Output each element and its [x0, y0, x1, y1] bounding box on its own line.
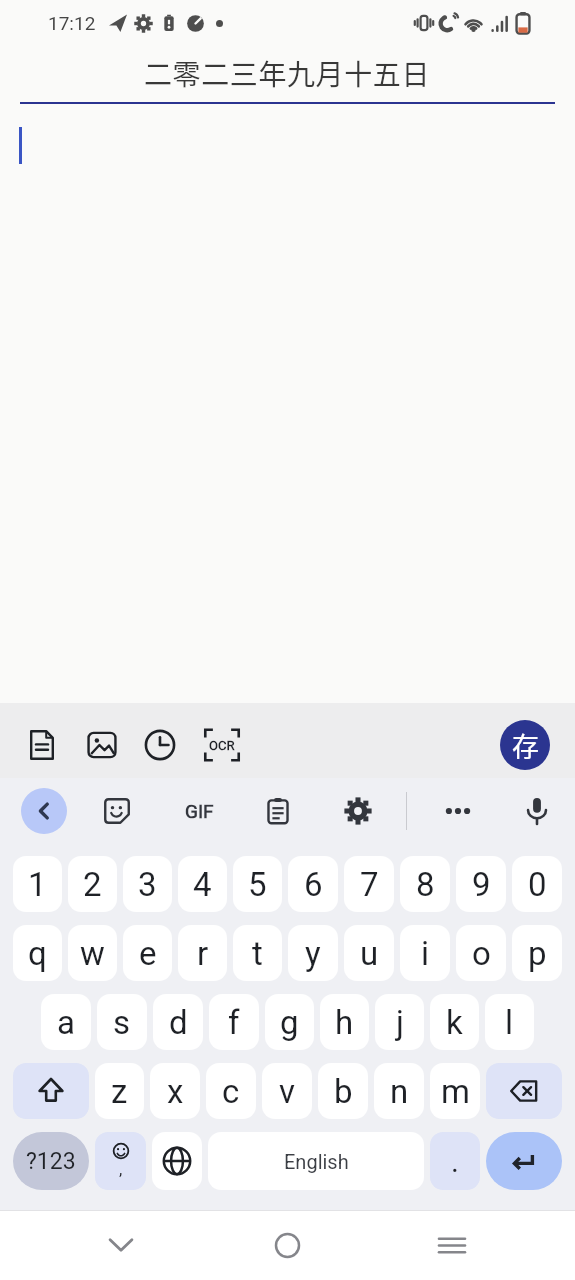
button[interactable] — [436, 1229, 468, 1261]
staticText: o — [472, 934, 491, 973]
staticText: 4 — [193, 865, 212, 904]
button[interactable] — [486, 1132, 562, 1190]
button[interactable]: h — [320, 994, 369, 1050]
button[interactable]: x — [150, 1063, 200, 1119]
button[interactable]: r — [178, 925, 227, 981]
staticText: 7 — [360, 865, 379, 904]
staticText: , — [119, 1159, 123, 1179]
button[interactable]: m — [430, 1063, 480, 1119]
button[interactable]: 7 — [344, 856, 394, 912]
staticText: k — [446, 1003, 463, 1042]
button[interactable]: English — [208, 1132, 424, 1190]
button[interactable]: t — [233, 925, 282, 981]
button[interactable]: OCR — [203, 726, 241, 764]
staticText: GIF — [185, 800, 214, 822]
button[interactable] — [13, 1063, 89, 1119]
staticText: 存 — [512, 726, 539, 765]
button[interactable] — [523, 797, 551, 825]
button[interactable]: a — [41, 994, 91, 1050]
button[interactable]: 6 — [288, 856, 338, 912]
staticText: s — [113, 1003, 131, 1042]
button[interactable] — [103, 797, 131, 825]
staticText: q — [28, 934, 47, 973]
button[interactable]: GIF — [177, 800, 221, 822]
staticText: 0 — [528, 865, 547, 904]
staticText: 3 — [138, 865, 157, 904]
button[interactable] — [25, 728, 59, 762]
staticText: t — [252, 934, 263, 973]
button[interactable]: ?123 — [13, 1132, 89, 1190]
staticText: 8 — [416, 865, 435, 904]
button[interactable]: 1 — [13, 856, 62, 912]
button[interactable] — [264, 797, 292, 825]
button[interactable]: 2 — [68, 856, 117, 912]
staticText: v — [279, 1072, 295, 1111]
button[interactable]: v — [262, 1063, 312, 1119]
staticText: 9 — [472, 865, 491, 904]
staticText: 1 — [28, 865, 47, 904]
button[interactable] — [105, 1229, 137, 1261]
button[interactable]: f — [209, 994, 259, 1050]
button[interactable]: b — [318, 1063, 368, 1119]
staticText: a — [57, 1003, 75, 1042]
staticText: OCR — [209, 738, 235, 753]
staticText: p — [528, 934, 547, 973]
button[interactable]: . — [430, 1132, 480, 1190]
button[interactable] — [344, 797, 372, 825]
button[interactable] — [152, 1132, 202, 1190]
staticText: g — [280, 1003, 299, 1042]
button[interactable]: 4 — [178, 856, 227, 912]
staticText: c — [222, 1072, 240, 1111]
button[interactable]: w — [68, 925, 117, 981]
staticText: w — [80, 934, 105, 973]
button[interactable] — [21, 788, 67, 834]
button[interactable]: z — [95, 1063, 144, 1119]
button[interactable]: p — [512, 925, 562, 981]
button[interactable]: 8 — [400, 856, 450, 912]
staticText: n — [390, 1072, 409, 1111]
staticText: u — [360, 934, 379, 973]
button[interactable]: y — [288, 925, 338, 981]
button[interactable] — [85, 728, 119, 762]
button[interactable]: i — [400, 925, 450, 981]
staticText: z — [111, 1072, 128, 1111]
staticText: f — [228, 1003, 240, 1042]
button[interactable]: c — [206, 1063, 256, 1119]
staticText: e — [139, 934, 157, 973]
button[interactable]: 0 — [512, 856, 562, 912]
button[interactable]: e — [123, 925, 172, 981]
button[interactable]: u — [344, 925, 394, 981]
button[interactable]: l — [485, 994, 534, 1050]
button[interactable]: 9 — [456, 856, 506, 912]
staticText: i — [421, 934, 430, 973]
button[interactable]: d — [153, 994, 203, 1050]
button[interactable]: o — [456, 925, 506, 981]
button[interactable]: j — [375, 994, 424, 1050]
button[interactable] — [486, 1063, 562, 1119]
button[interactable]: 存 — [500, 720, 550, 770]
button[interactable] — [143, 728, 177, 762]
button[interactable]: 5 — [233, 856, 282, 912]
button[interactable]: s — [97, 994, 147, 1050]
staticText: x — [167, 1072, 184, 1111]
button[interactable]: , — [95, 1132, 146, 1190]
staticText: j — [396, 1003, 404, 1042]
staticText: b — [334, 1072, 353, 1111]
button[interactable] — [271, 1229, 303, 1261]
staticText: 17:12 — [48, 12, 96, 34]
button[interactable]: q — [13, 925, 62, 981]
staticText: r — [197, 934, 209, 973]
staticText: 二零二三年九月十五日 — [144, 53, 431, 94]
staticText: y — [305, 934, 321, 973]
staticText: l — [505, 1003, 514, 1042]
button[interactable] — [443, 796, 473, 826]
staticText: 6 — [304, 865, 323, 904]
button[interactable]: g — [265, 994, 314, 1050]
staticText: 2 — [83, 865, 102, 904]
button[interactable]: 3 — [123, 856, 172, 912]
staticText: ?123 — [26, 1148, 76, 1175]
staticText: h — [335, 1003, 354, 1042]
button[interactable]: k — [430, 994, 479, 1050]
staticText: d — [169, 1003, 188, 1042]
button[interactable]: n — [374, 1063, 424, 1119]
